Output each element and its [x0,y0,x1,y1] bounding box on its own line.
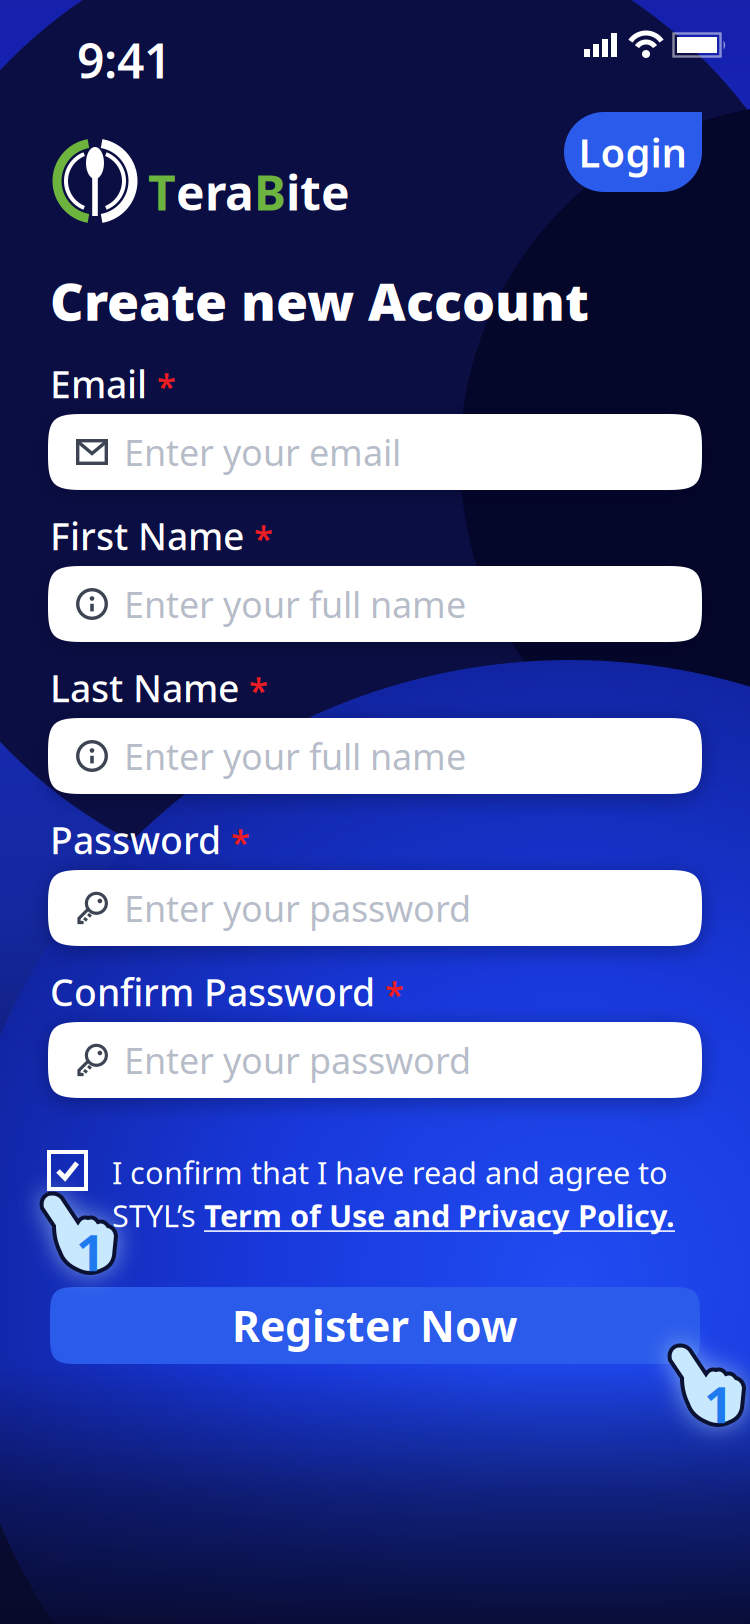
staticText: Create new Account [50,266,589,335]
button[interactable] [47,1150,88,1191]
staticText: Confirm Password [50,967,375,1017]
staticText: ite [286,160,350,224]
staticText: I confirm that I have read and agree to [112,1152,668,1193]
staticText: * [385,971,404,1017]
button[interactable]: Enter your email [48,414,702,490]
staticText: Last Name [50,663,239,713]
staticText: * [254,515,273,561]
staticText: Password [50,815,221,865]
button[interactable]: Enter your full name [48,566,702,642]
staticText: 9:41 [77,28,171,92]
staticText: 1 [704,1370,733,1437]
staticText: Enter your full name [124,580,466,628]
staticText: Login [578,125,687,178]
staticText: * [157,363,176,409]
staticText: B [254,160,286,224]
button[interactable]: STYL’s Term of Use and Privacy Policy. [112,1195,675,1236]
button[interactable]: Enter your password [48,1022,702,1098]
staticText: First Name [50,511,244,561]
staticText: 1 [76,1218,105,1285]
button[interactable]: Enter your password [48,870,702,946]
staticText: Enter your password [124,1036,471,1084]
staticText: Enter your full name [124,732,466,780]
staticText: Register Now [232,1297,518,1354]
button[interactable]: Enter your full name [48,718,702,794]
button[interactable]: Register Now [50,1287,700,1364]
staticText: * [231,819,250,865]
staticText: Email [50,359,147,409]
staticText: T [148,160,176,224]
staticText: era [176,160,254,224]
staticText: * [249,667,268,713]
staticText: STYL’s Term of Use and Privacy Policy. [112,1195,675,1236]
staticText: Enter your password [124,884,471,932]
staticText: Enter your email [124,428,401,476]
button[interactable]: Login [564,112,702,192]
